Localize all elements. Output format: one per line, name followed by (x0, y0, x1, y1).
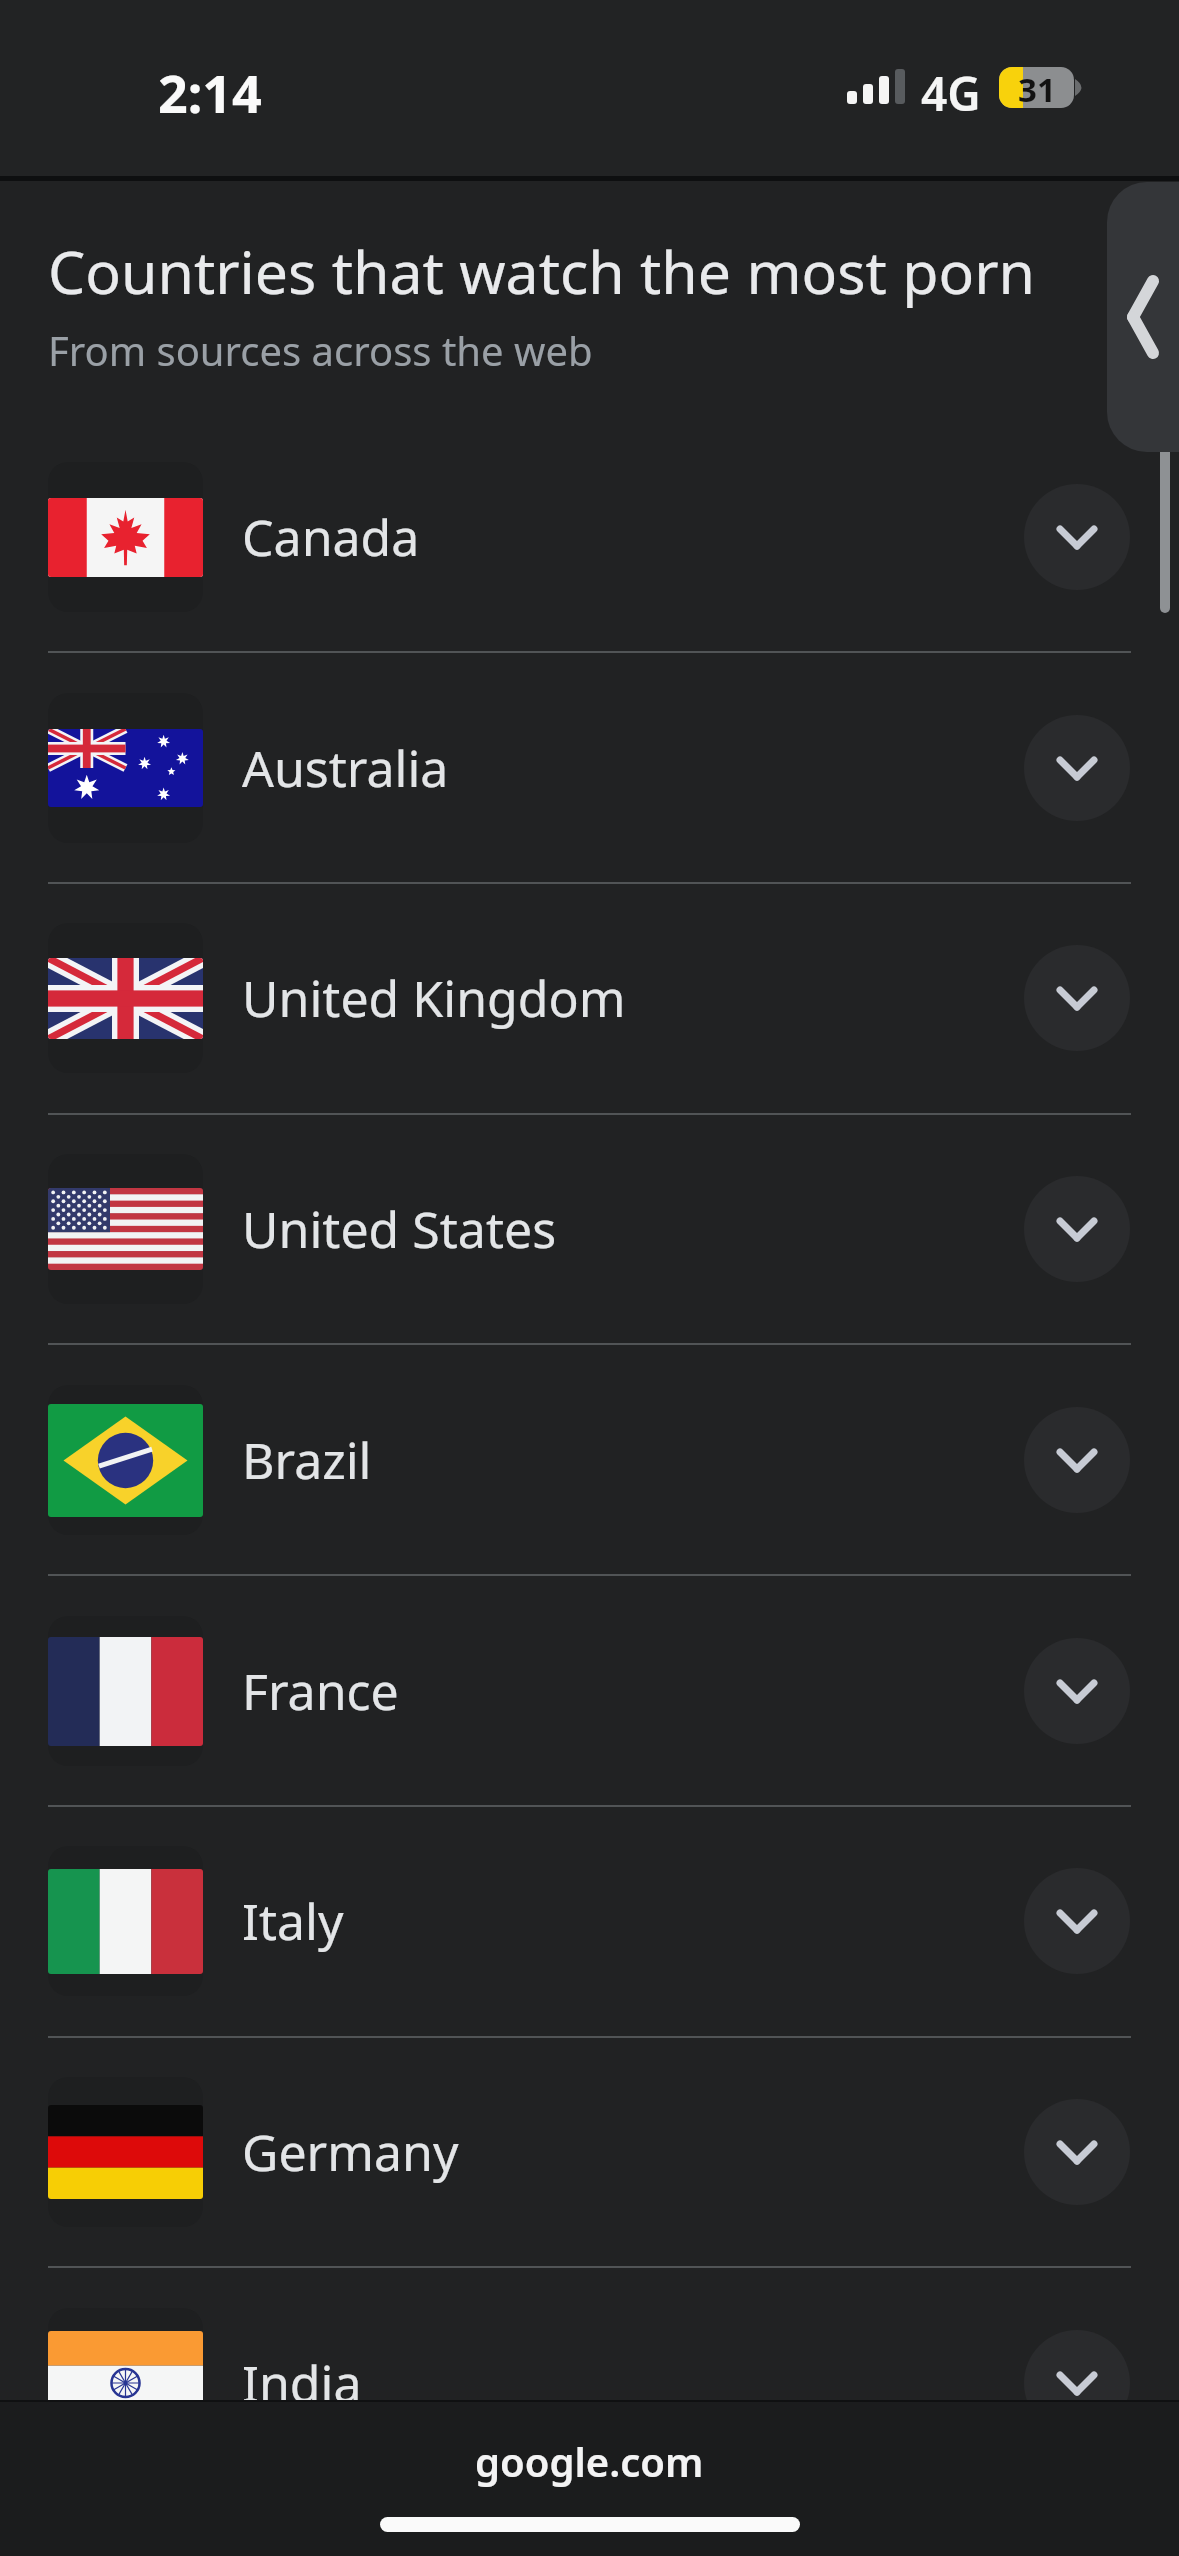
staticText: France (242, 1657, 399, 1725)
button[interactable] (1024, 484, 1130, 590)
staticText: 2:14 (158, 57, 262, 128)
button[interactable] (1024, 1638, 1130, 1744)
staticText: Countries that watch the most porn (48, 231, 1036, 311)
staticText: India (242, 2349, 362, 2417)
button[interactable]: India (0, 2268, 1179, 2498)
staticText: google.com (475, 2434, 704, 2488)
staticText: United States (242, 1195, 557, 1263)
staticText: From sources across the web (48, 323, 593, 377)
button[interactable] (1024, 1176, 1130, 1282)
staticText: 4G (921, 62, 981, 125)
button[interactable]: Australia (0, 653, 1179, 883)
staticText: Canada (242, 503, 420, 571)
staticText: United Kingdom (242, 964, 626, 1032)
button[interactable] (1024, 2099, 1130, 2205)
button[interactable]: google.com (0, 2400, 1179, 2556)
staticText: 31 (1018, 67, 1056, 108)
button[interactable] (1024, 715, 1130, 821)
button[interactable]: France (0, 1576, 1179, 1806)
button[interactable]: United Kingdom (0, 883, 1179, 1113)
button[interactable]: Brazil (0, 1345, 1179, 1575)
staticText: Germany (242, 2118, 459, 2186)
staticText: Brazil (242, 1426, 372, 1494)
staticText: Italy (242, 1887, 344, 1955)
button[interactable] (1024, 2330, 1130, 2436)
button[interactable]: Italy (0, 1806, 1179, 2036)
button[interactable] (1107, 182, 1179, 452)
button[interactable] (1024, 1868, 1130, 1974)
button[interactable]: Canada (0, 422, 1179, 652)
button[interactable]: United States (0, 1114, 1179, 1344)
button[interactable] (1024, 1407, 1130, 1513)
button[interactable]: Germany (0, 2037, 1179, 2267)
button[interactable] (1024, 945, 1130, 1051)
staticText: Australia (242, 734, 449, 802)
